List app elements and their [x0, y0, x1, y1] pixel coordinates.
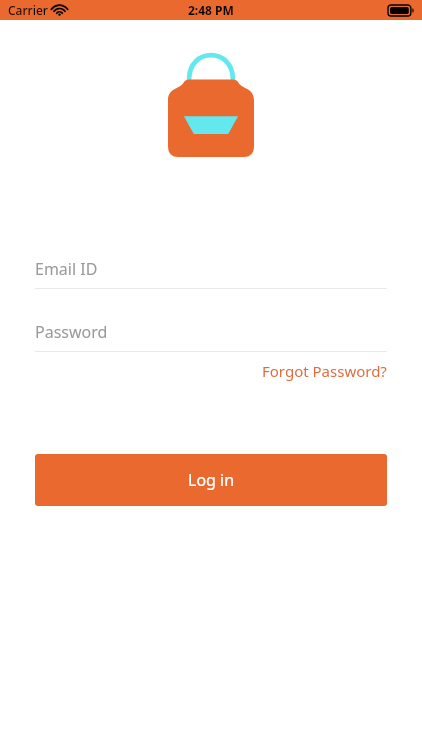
staticText: Email ID [35, 258, 98, 280]
staticText: Password [35, 321, 108, 343]
button[interactable]: Forgot Password? [262, 358, 387, 384]
staticText: Forgot Password? [262, 361, 387, 381]
staticText: Carrier [8, 2, 48, 18]
button[interactable]: Password [35, 313, 387, 351]
button[interactable]: Log in [35, 454, 387, 506]
staticText: 2:48 PM [188, 2, 234, 18]
staticText: Log in [188, 469, 235, 491]
button[interactable]: Email ID [35, 250, 387, 288]
